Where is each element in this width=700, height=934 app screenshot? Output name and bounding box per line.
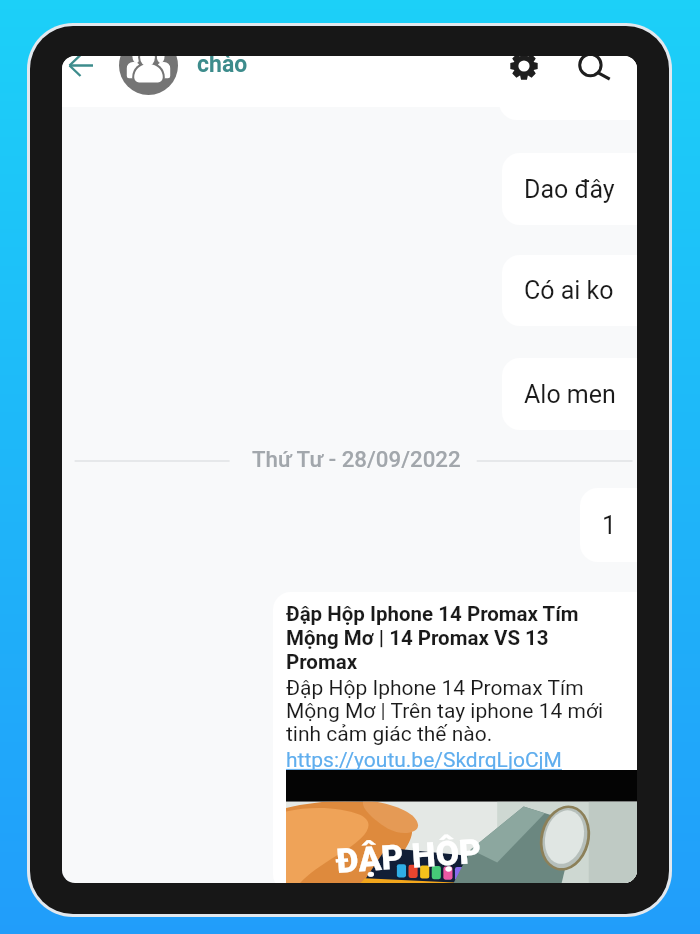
staticText: ĐẬP HỘP	[335, 831, 483, 881]
button[interactable]: Group avatar	[119, 56, 178, 95]
button[interactable]	[499, 56, 637, 120]
button[interactable]: Dao đây	[502, 153, 637, 225]
button[interactable]: Back	[62, 56, 106, 88]
button[interactable]: 1	[580, 488, 637, 562]
button[interactable]: Search	[578, 56, 611, 81]
button[interactable]: Settings	[510, 56, 538, 80]
staticText: Đập Hộp Iphone 14 Promax Tím Mộng Mơ | T…	[286, 676, 616, 746]
staticText: Dao đây	[524, 175, 615, 204]
button[interactable]: Có ai ko	[502, 255, 637, 326]
button[interactable]: chào	[197, 56, 248, 78]
staticText: 1	[602, 511, 617, 540]
button[interactable]	[273, 592, 637, 883]
staticText: Thứ Tư - 28/09/2022	[252, 446, 461, 472]
staticText: Alo men	[524, 380, 616, 409]
staticText: Đập Hộp Iphone 14 Promax Tím Mộng Mơ | 1…	[286, 602, 616, 674]
staticText: chào	[197, 56, 248, 78]
staticText: Có ai ko	[524, 276, 614, 305]
staticText: https://youtu.be/SkdrqLjoCjM	[286, 748, 562, 773]
button[interactable]: Play video	[286, 770, 637, 883]
button[interactable]: Alo men	[502, 358, 637, 430]
